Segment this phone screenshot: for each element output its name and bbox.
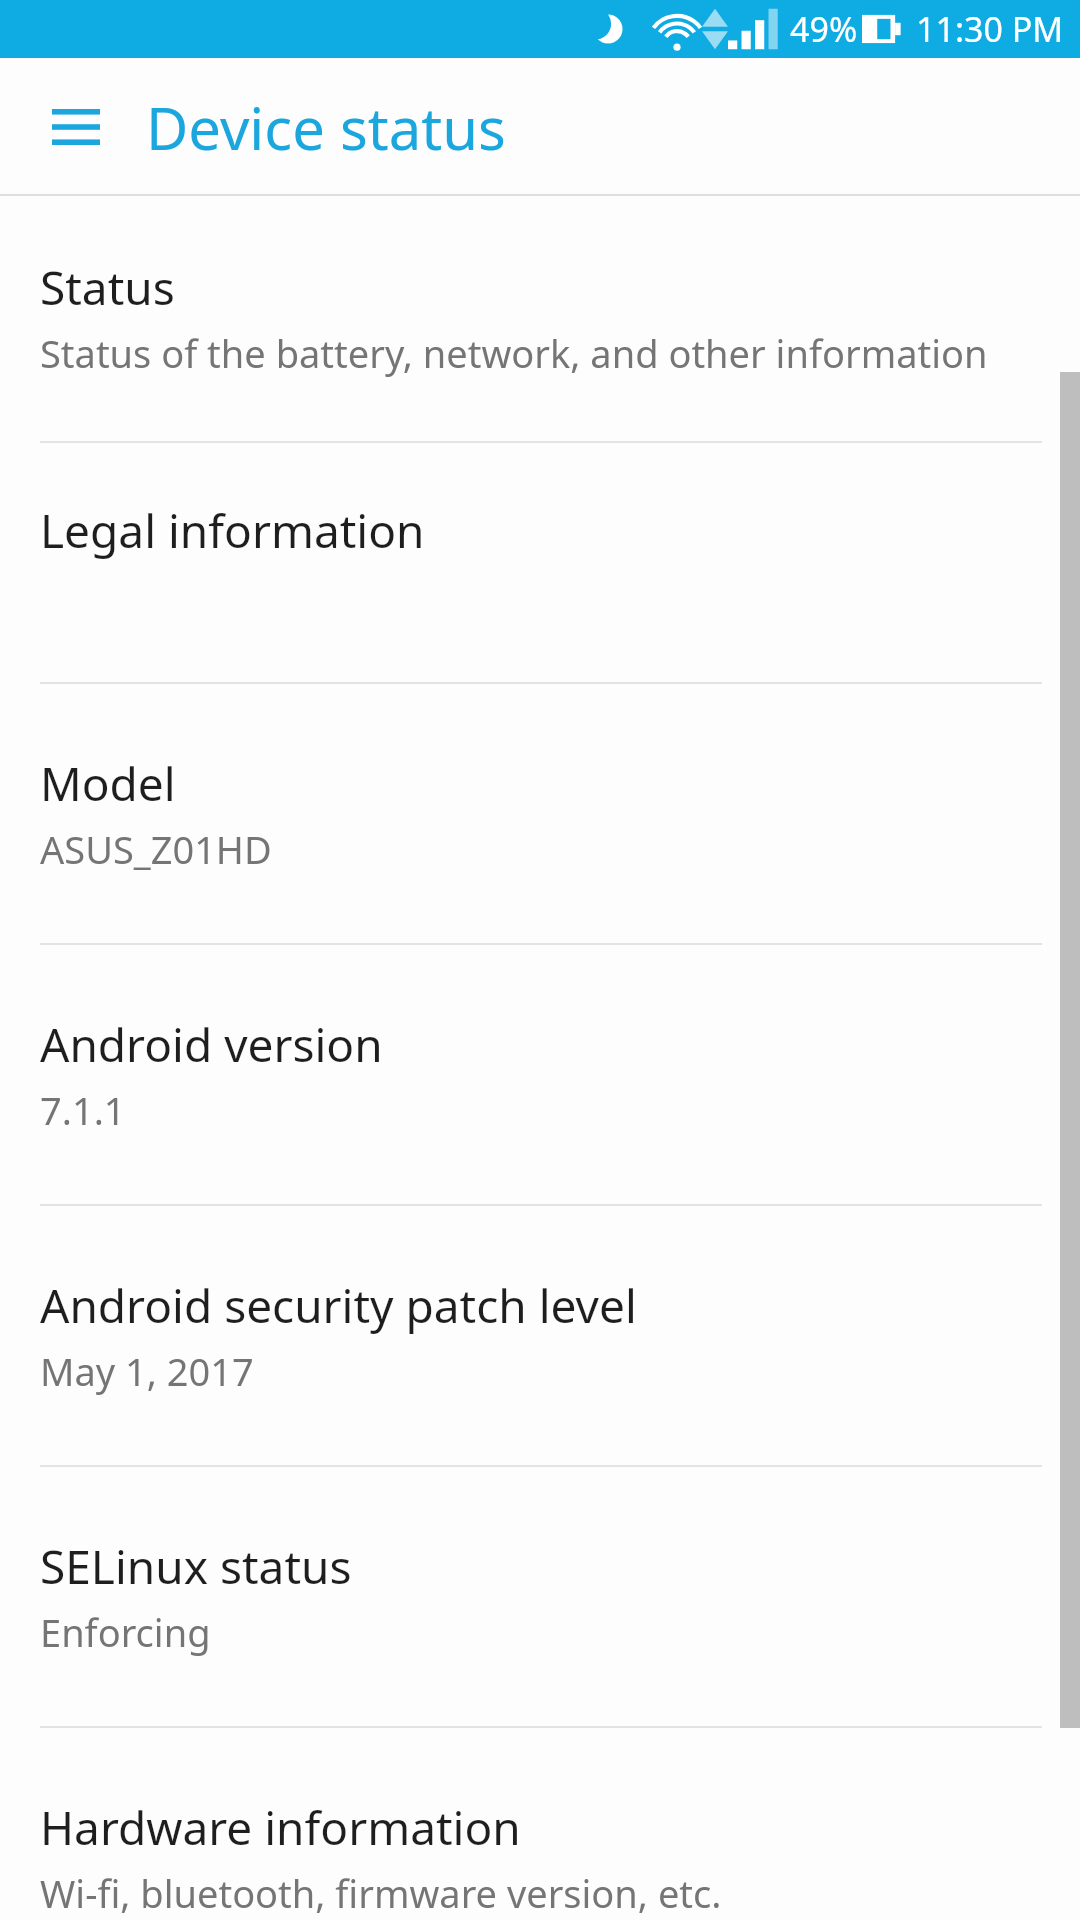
staticText: Android security patch level <box>40 1274 637 1337</box>
staticText: Device status <box>146 88 506 167</box>
button[interactable]: Android security patch level <box>0 1206 1080 1467</box>
staticText: Legal information <box>40 499 425 562</box>
button[interactable]: Legal information <box>0 443 1080 684</box>
button[interactable]: Open navigation menu <box>26 77 126 177</box>
staticText: SELinux status <box>40 1535 352 1598</box>
button[interactable]: SELinux status <box>0 1467 1080 1728</box>
staticText: May 1, 2017 <box>40 1345 254 1397</box>
staticText: Wi-fi, bluetooth, firmware version, etc. <box>40 1867 722 1919</box>
staticText: Android version <box>40 1013 383 1076</box>
staticText: 49% <box>790 6 858 52</box>
button[interactable]: Android version <box>0 945 1080 1206</box>
staticText: Model <box>40 752 176 815</box>
staticText: Enforcing <box>40 1606 211 1658</box>
button[interactable]: Model <box>0 684 1080 945</box>
button[interactable]: Status <box>0 196 1080 443</box>
staticText: Status <box>40 256 175 319</box>
staticText: 11:30 PM <box>916 6 1064 52</box>
staticText: ASUS_Z01HD <box>40 823 272 875</box>
button[interactable]: Hardware information <box>0 1728 1080 1920</box>
staticText: Hardware information <box>40 1796 521 1859</box>
staticText: 7.1.1 <box>40 1084 126 1136</box>
staticText: Status of the battery, network, and othe… <box>40 327 988 379</box>
